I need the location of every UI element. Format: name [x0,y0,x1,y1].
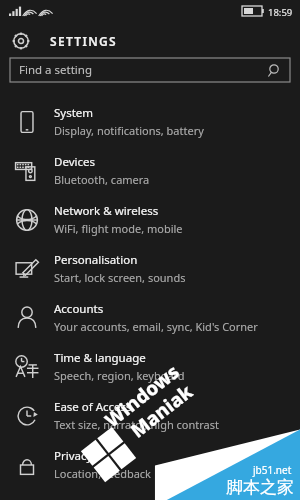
staticText: Location, feedback [54,466,151,481]
button[interactable]: Personalisation [0,244,300,293]
staticText: WiFi, flight mode, mobile [54,221,183,236]
button[interactable]: Settings [10,30,32,52]
staticText: Display, notifications, battery [54,123,204,138]
button[interactable]: Accounts [0,293,300,342]
button[interactable]: Privacy [0,440,300,489]
button[interactable]: Network & wireless [0,195,300,244]
button[interactable]: Time & language [0,342,300,391]
staticText: Devices [54,154,95,170]
staticText: Accounts [54,301,104,317]
staticText: Your accounts, email, sync, Kid's Corner [54,319,258,334]
staticText: Find a setting [19,62,92,78]
staticText: Time & language [54,350,146,366]
staticText: jb51.net [253,463,292,477]
staticText: Bluetooth, camera [54,172,150,187]
staticText: Maniak [125,379,198,443]
staticText: Personalisation [54,252,138,268]
button[interactable]: System [0,97,300,146]
staticText: SETTINGS [50,33,117,49]
staticText: Privacy [54,448,93,464]
button[interactable]: Ease of Access [0,391,300,440]
staticText: 18:59 [268,6,293,19]
button[interactable]: Find a setting [10,58,290,82]
staticText: System [54,105,94,121]
staticText: Start, lock screen, sounds [54,270,186,285]
staticText: Speech, region, keyboard [54,368,185,383]
staticText: Text size, narrator, high contrast [54,417,219,432]
staticText: 脚本之家 [226,477,294,498]
staticText: Network & wireless [54,203,159,219]
button[interactable]: Devices [0,146,300,195]
staticText: Windows [99,358,185,433]
staticText: Ease of Access [54,399,132,415]
